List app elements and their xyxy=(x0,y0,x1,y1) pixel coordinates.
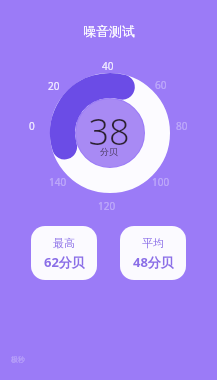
staticText: 80 xyxy=(176,119,188,133)
staticText: 40 xyxy=(102,59,114,73)
button[interactable]: 最高 xyxy=(31,226,97,280)
staticText: 分贝 xyxy=(100,146,118,157)
staticText: 最高 xyxy=(53,236,75,250)
staticText: 38 xyxy=(88,107,130,156)
staticText: 极秒 xyxy=(11,355,25,364)
staticText: 100 xyxy=(152,175,170,189)
button[interactable]: 平均 xyxy=(120,226,186,280)
staticText: 48分贝 xyxy=(133,253,174,271)
staticText: 平均 xyxy=(142,236,164,250)
staticText: 60 xyxy=(155,78,167,92)
staticText: 20 xyxy=(48,79,60,93)
staticText: 140 xyxy=(49,175,67,189)
staticText: 62分贝 xyxy=(44,253,85,271)
staticText: 噪音测试 xyxy=(83,23,135,39)
staticText: 120 xyxy=(98,199,116,213)
staticText: 0 xyxy=(29,119,35,133)
